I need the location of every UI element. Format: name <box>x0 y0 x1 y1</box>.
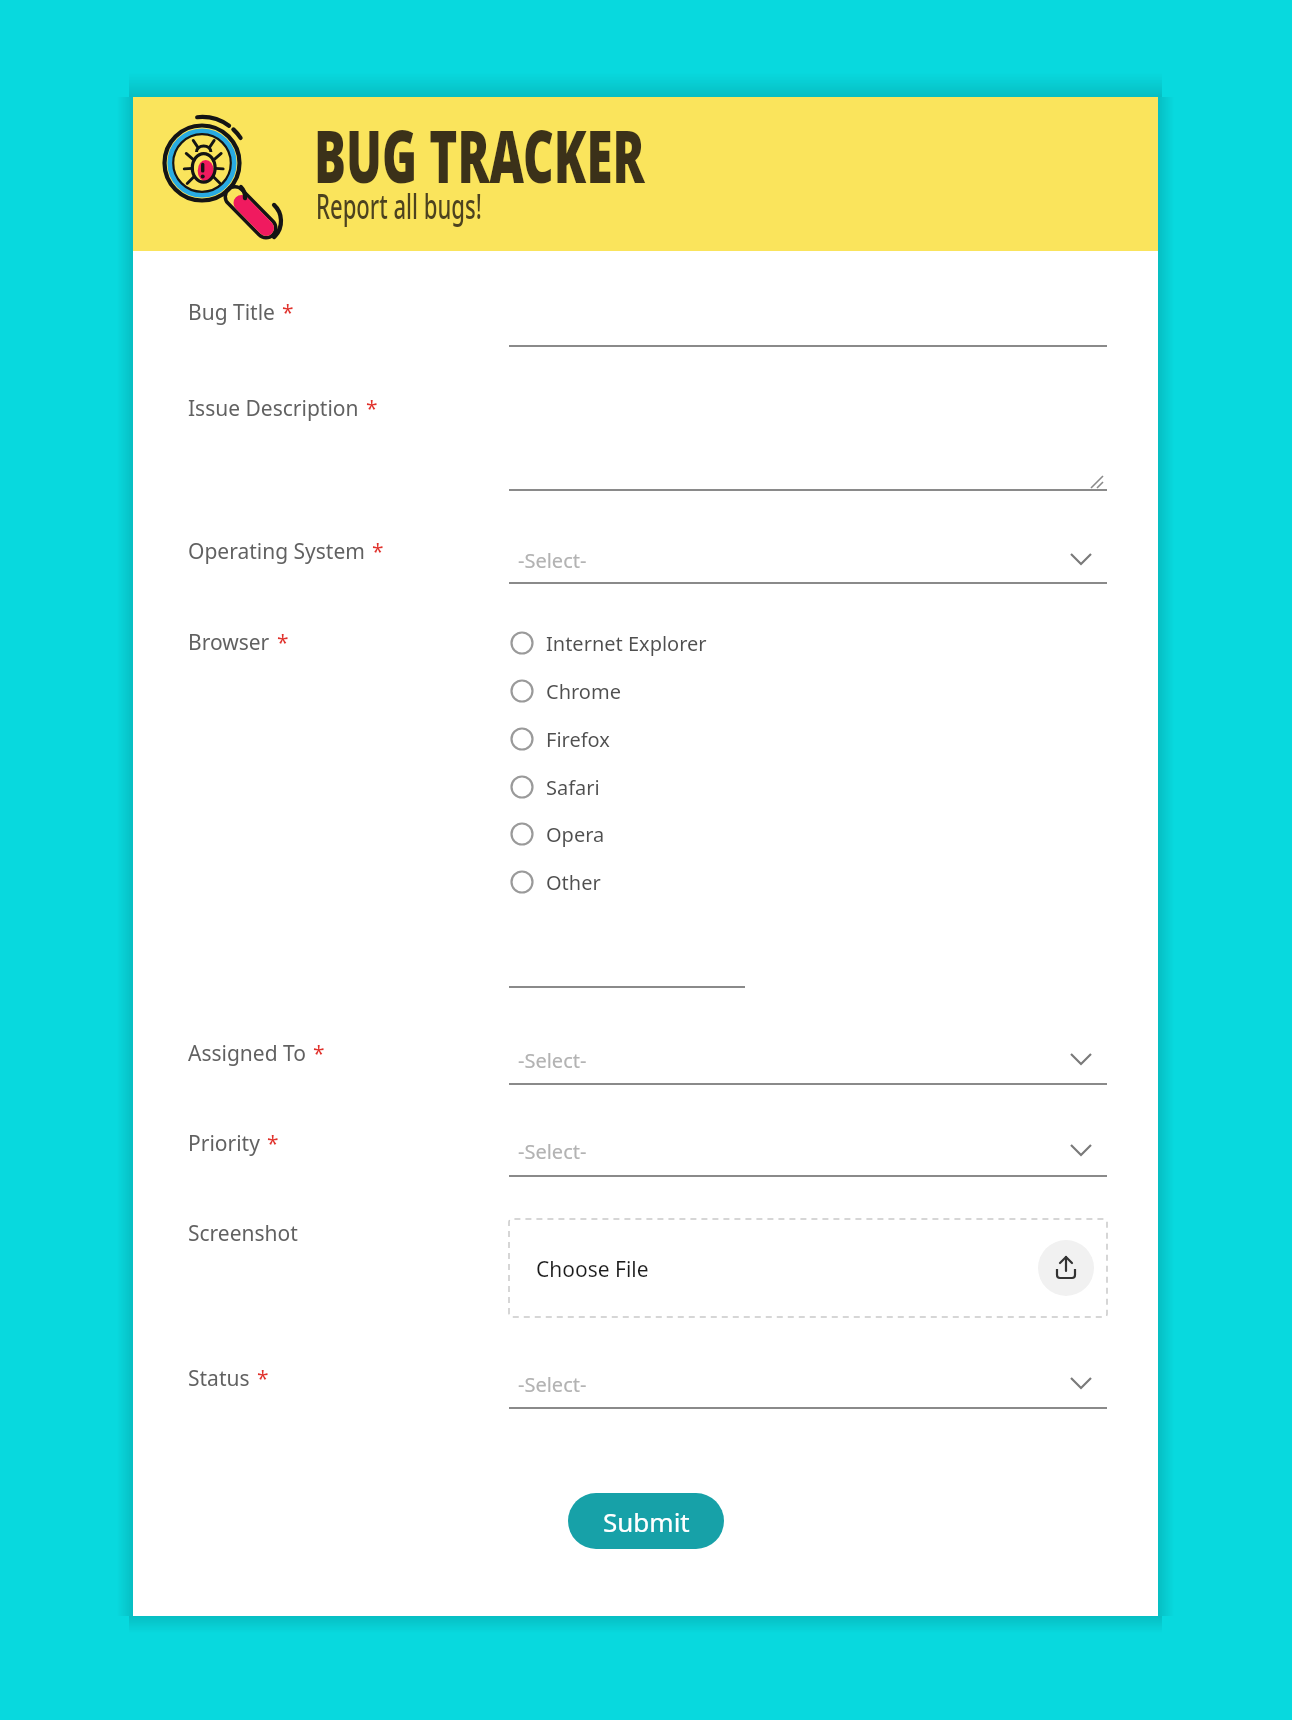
button[interactable]: Other <box>510 866 770 898</box>
staticText: Bug Title <box>188 298 275 327</box>
staticText: Operating System <box>188 537 365 566</box>
staticText: -Select- <box>518 1371 587 1398</box>
staticText: Status <box>188 1364 250 1393</box>
button[interactable]: Opera <box>510 818 770 850</box>
staticText: Safari <box>546 774 600 801</box>
button[interactable]: Firefox <box>510 723 770 755</box>
staticText: Browser <box>188 628 270 657</box>
button[interactable] <box>1038 1240 1094 1296</box>
button[interactable]: Choose File <box>509 1219 1107 1317</box>
staticText: -Select- <box>518 547 587 574</box>
staticText: -Select- <box>518 1047 587 1074</box>
staticText: Other <box>546 869 601 896</box>
staticText: * <box>313 1039 325 1068</box>
staticText: Submit <box>603 1504 690 1539</box>
button[interactable]: -Select- <box>509 1361 1107 1409</box>
button[interactable] <box>509 947 745 987</box>
staticText: Opera <box>546 821 605 848</box>
button[interactable]: -Select- <box>509 1037 1107 1085</box>
staticText: Issue Description <box>188 394 359 423</box>
button[interactable] <box>509 307 1107 349</box>
staticText: * <box>372 537 384 566</box>
staticText: Assigned To <box>188 1039 306 1068</box>
button[interactable]: -Select- <box>509 1128 1107 1177</box>
staticText: Internet Explorer <box>546 630 707 657</box>
staticText: Screenshot <box>188 1219 298 1248</box>
button[interactable]: Safari <box>510 771 770 803</box>
button[interactable]: Submit <box>568 1493 724 1549</box>
button[interactable]: Chrome <box>510 675 770 707</box>
staticText: Chrome <box>546 678 621 705</box>
staticText: BUG TRACKER <box>314 105 645 204</box>
staticText: * <box>277 628 289 657</box>
staticText: * <box>267 1129 279 1158</box>
button[interactable] <box>509 397 1107 492</box>
staticText: * <box>282 298 294 327</box>
staticText: Priority <box>188 1129 260 1158</box>
staticText: * <box>366 394 378 423</box>
staticText: Firefox <box>546 726 610 753</box>
staticText: * <box>257 1364 269 1393</box>
button[interactable]: Internet Explorer <box>510 627 770 659</box>
staticText: Choose File <box>536 1255 649 1284</box>
staticText: Report all bugs! <box>316 183 482 229</box>
button[interactable]: -Select- <box>509 537 1107 584</box>
staticText: -Select- <box>518 1138 587 1165</box>
